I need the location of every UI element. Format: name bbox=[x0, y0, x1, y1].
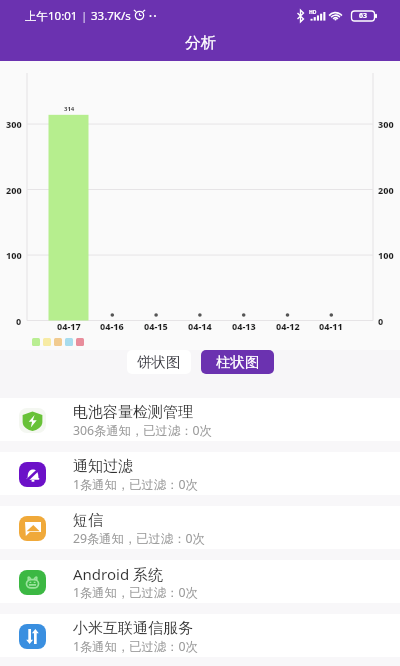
staticText: 04-12 bbox=[276, 320, 300, 332]
staticText: 通知过滤 bbox=[73, 457, 133, 476]
staticText: 04-15 bbox=[144, 320, 168, 332]
staticText: 分析 bbox=[185, 33, 216, 53]
staticText: 短信 bbox=[73, 511, 103, 530]
staticText: 1条通知，已过滤：0次 bbox=[73, 584, 198, 601]
button[interactable]: 柱状图 bbox=[201, 350, 274, 374]
staticText: 04-13 bbox=[232, 320, 256, 332]
staticText: 200 bbox=[6, 184, 22, 196]
staticText: 04-16 bbox=[100, 320, 124, 332]
staticText: 100 bbox=[6, 249, 22, 261]
staticText: 100 bbox=[378, 249, 394, 261]
button[interactable]: 小米互联通信服务 bbox=[0, 614, 400, 657]
staticText: 314 bbox=[64, 105, 75, 113]
staticText: 1条通知，已过滤：0次 bbox=[73, 476, 198, 493]
staticText: 上午10:01 bbox=[25, 8, 78, 24]
staticText: 柱状图 bbox=[216, 353, 260, 371]
staticText: 04-17 bbox=[57, 320, 81, 332]
staticText: 300 bbox=[378, 118, 394, 130]
staticText: 29条通知，已过滤：0次 bbox=[73, 530, 205, 547]
button[interactable]: 电池容量检测管理 bbox=[0, 398, 400, 441]
staticText: 04-11 bbox=[319, 320, 343, 332]
staticText: 04-14 bbox=[188, 320, 212, 332]
staticText: HD bbox=[309, 9, 317, 16]
button[interactable]: 饼状图 bbox=[127, 350, 191, 374]
staticText: 306条通知，已过滤：0次 bbox=[73, 422, 212, 439]
staticText: 饼状图 bbox=[137, 353, 181, 371]
staticText: 300 bbox=[6, 118, 22, 130]
staticText: 电池容量检测管理 bbox=[73, 403, 193, 422]
staticText: 小米互联通信服务 bbox=[73, 619, 193, 638]
staticText: 1条通知，已过滤：0次 bbox=[73, 638, 198, 655]
staticText: 0 bbox=[378, 315, 384, 327]
staticText: 200 bbox=[378, 184, 394, 196]
staticText: 63 bbox=[359, 11, 368, 21]
button[interactable]: 通知过滤 bbox=[0, 452, 400, 495]
button[interactable]: 短信 bbox=[0, 506, 400, 549]
staticText: 0 bbox=[16, 315, 22, 327]
button[interactable]: Android 系统 bbox=[0, 560, 400, 603]
staticText: 33.7K/s bbox=[91, 8, 131, 24]
staticText: Android 系统 bbox=[73, 564, 164, 584]
staticText: | bbox=[78, 8, 91, 24]
